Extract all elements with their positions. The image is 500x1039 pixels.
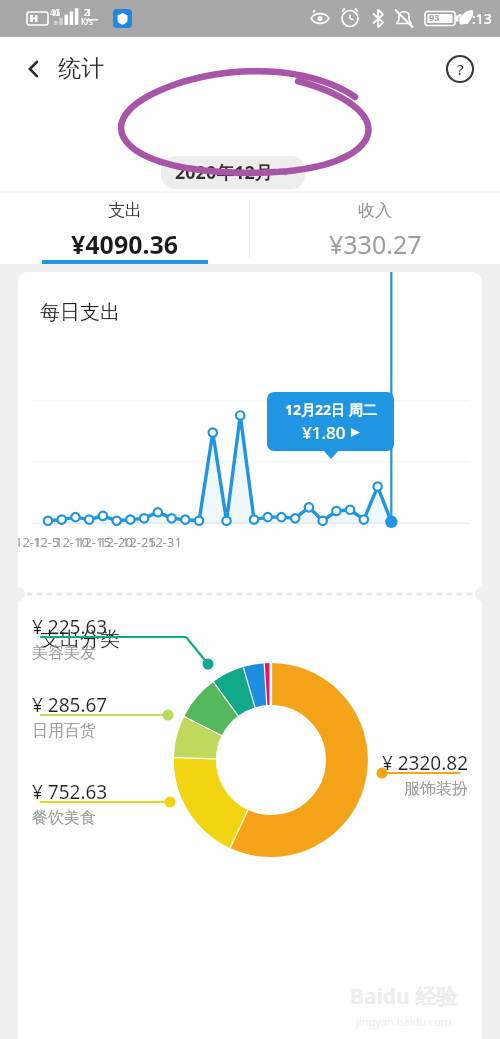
button[interactable]: ¥ 2320.82 [381, 750, 468, 799]
staticText: 收入 [358, 200, 392, 221]
staticText: 2 [84, 6, 90, 18]
button[interactable]: ¥ 285.67 [32, 692, 108, 741]
staticText: 2020年12月 [175, 160, 273, 185]
staticText: 服饰装扮 [404, 779, 468, 799]
staticText: jingyan.baidu.com [356, 1014, 452, 1029]
staticText: 12-15 [77, 533, 111, 551]
staticText: 支出分类 [40, 627, 120, 652]
button[interactable]: ¥ 225.63 [32, 614, 108, 663]
button[interactable]: 2020年12月 [161, 156, 305, 189]
staticText: 12-25 [122, 533, 156, 551]
staticText: 支出 [108, 200, 142, 221]
staticText: 餐饮美食 [32, 808, 96, 828]
staticText: 12-10 [55, 533, 89, 551]
button[interactable]: 支出 [0, 200, 249, 264]
staticText: Baidu 经验 [350, 982, 458, 1011]
staticText: K/s [81, 16, 93, 27]
staticText: 17:13 [456, 9, 492, 28]
staticText: 日用百货 [32, 721, 96, 741]
button[interactable]: ¥ 752.63 [32, 779, 108, 828]
staticText: 12-1 [18, 533, 42, 551]
button[interactable]: 返回 [10, 45, 58, 93]
staticText: ¥ 752.63 [32, 779, 108, 805]
staticText: ¥ 2320.82 [381, 750, 468, 776]
staticText: ¥ 225.63 [32, 614, 108, 640]
button[interactable]: 12月22日 周二 [267, 392, 394, 451]
staticText: 美容美发 [32, 643, 96, 663]
staticText: 4G [50, 7, 61, 18]
staticText: 每日支出 [40, 300, 120, 325]
staticText: ¥330.27 [329, 227, 422, 261]
button[interactable]: 收入 [250, 200, 500, 264]
staticText: ¥1.80 [302, 421, 346, 444]
staticText: 统计 [58, 54, 104, 83]
button[interactable]: 帮助 [436, 45, 484, 93]
staticText: ? [457, 59, 464, 79]
staticText: ¥4090.36 [71, 227, 179, 261]
staticText: 12-20 [99, 533, 133, 551]
staticText: 93 [429, 11, 440, 23]
staticText: ¥ 285.67 [32, 692, 108, 718]
staticText: 12-5 [33, 533, 60, 551]
staticText: 12-31 [148, 533, 182, 551]
staticText: 12月22日 周二 [285, 400, 377, 419]
